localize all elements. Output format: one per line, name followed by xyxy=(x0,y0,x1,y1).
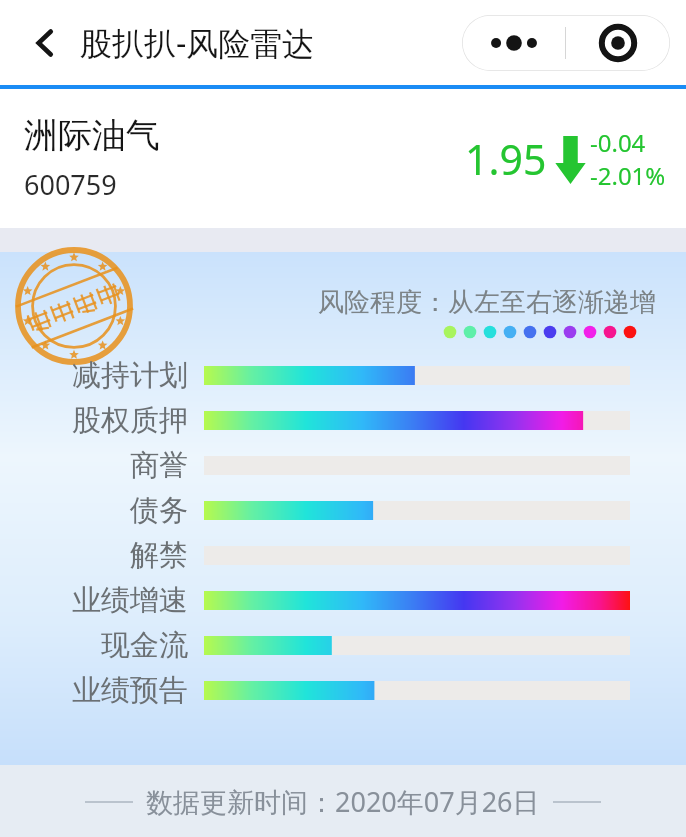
staticText: 1.95 xyxy=(465,131,547,187)
staticText: -2.01% xyxy=(590,159,666,192)
button[interactable]: Target xyxy=(566,15,670,71)
staticText: 股权质押 xyxy=(72,402,188,439)
staticText: 商誉 xyxy=(130,447,188,484)
staticText: -0.04 xyxy=(590,126,646,159)
staticText: 解禁 xyxy=(130,537,188,574)
staticText: 业绩预告 xyxy=(72,672,188,709)
staticText: 数据更新时间：2020年07月26日 xyxy=(146,783,540,820)
staticText: 600759 xyxy=(24,166,117,203)
staticText: 减持计划 xyxy=(72,357,188,394)
button[interactable]: Back xyxy=(22,20,68,66)
staticText: 洲际油气 xyxy=(24,114,160,157)
staticText: 业绩增速 xyxy=(72,582,188,619)
staticText: 股扒扒-风险雷达 xyxy=(80,21,315,65)
staticText: 债务 xyxy=(130,492,188,529)
staticText: 风险程度：从左至右逐渐递增 xyxy=(318,286,656,319)
button[interactable]: More options xyxy=(462,15,565,71)
staticText: 现金流 xyxy=(101,627,188,664)
